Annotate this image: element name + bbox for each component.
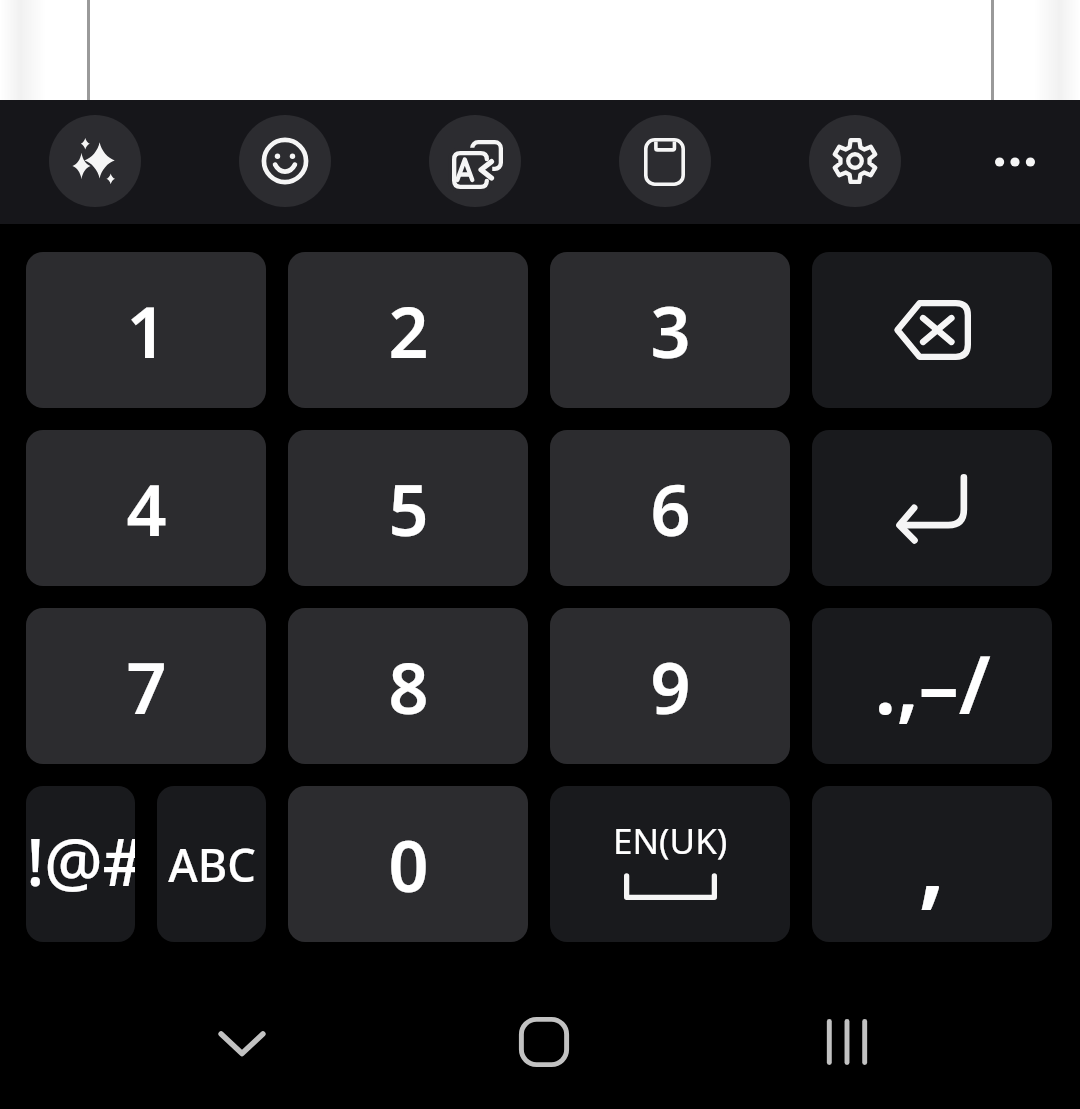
button[interactable]: AI assist	[49, 115, 141, 207]
button[interactable]: Emoji	[239, 115, 331, 207]
button[interactable]: 0	[288, 786, 528, 942]
staticText: 6	[650, 461, 691, 556]
button[interactable]: 6	[550, 430, 790, 586]
button[interactable]: Clipboard	[619, 115, 711, 207]
staticText: ABC	[168, 834, 256, 895]
staticText: .,–/	[874, 628, 991, 737]
button[interactable]: Backspace	[812, 252, 1052, 408]
button[interactable]: 9	[550, 608, 790, 764]
staticText: 0	[388, 817, 429, 912]
staticText: 4	[126, 461, 167, 556]
button[interactable]: .,–/	[812, 608, 1052, 764]
button[interactable]: 2	[288, 252, 528, 408]
staticText: EN(UK)	[613, 817, 728, 865]
button[interactable]: Home	[477, 975, 611, 1109]
staticText: 3	[650, 283, 691, 378]
staticText: 2	[388, 283, 429, 378]
staticText: 9	[650, 639, 691, 734]
button[interactable]: Hide keyboard	[175, 975, 309, 1109]
button[interactable]: 4	[26, 430, 266, 586]
staticText: 1	[126, 283, 167, 378]
staticText: 7	[126, 639, 167, 734]
button[interactable]: 5	[288, 430, 528, 586]
button[interactable]: Recent apps	[780, 975, 914, 1109]
button[interactable]: Translate	[429, 115, 521, 207]
button[interactable]: 3	[550, 252, 790, 408]
staticText: !@#	[26, 817, 135, 906]
staticText: 5	[388, 461, 429, 556]
button[interactable]: Enter	[812, 430, 1052, 586]
button[interactable]: 8	[288, 608, 528, 764]
staticText: 8	[388, 639, 429, 734]
button[interactable]: Settings	[809, 115, 901, 207]
button[interactable]: !@#	[26, 786, 135, 942]
button[interactable]: More options	[969, 116, 1061, 208]
button[interactable]: ABC	[157, 786, 266, 942]
button[interactable]: ,	[812, 786, 1052, 942]
staticText: ,	[918, 792, 946, 925]
button[interactable]: EN(UK)	[550, 786, 790, 942]
button[interactable]: 1	[26, 252, 266, 408]
button[interactable]: 7	[26, 608, 266, 764]
